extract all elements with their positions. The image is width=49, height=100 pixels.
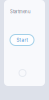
staticText: Start: [16, 37, 27, 43]
button[interactable]: Start: [10, 34, 34, 45]
staticText: Startmenu: [10, 9, 31, 14]
